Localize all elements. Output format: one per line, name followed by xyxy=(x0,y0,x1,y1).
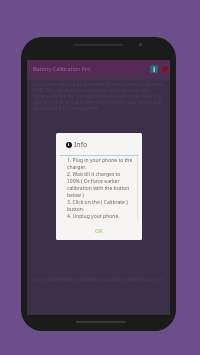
button[interactable]: Share on Facebook xyxy=(148,63,159,74)
staticText: Battery Calibration Pro xyxy=(33,65,91,72)
staticText: Info xyxy=(74,140,88,150)
button[interactable]: OK xyxy=(56,223,142,240)
button[interactable]: Favorite xyxy=(159,63,170,74)
staticText: i xyxy=(68,142,70,148)
staticText: 1. Plug in your phone to the charger. 2.… xyxy=(67,157,133,220)
staticText: OK xyxy=(95,227,103,234)
